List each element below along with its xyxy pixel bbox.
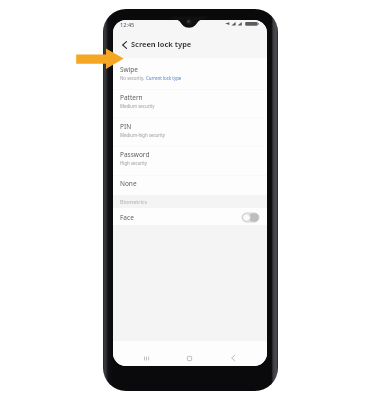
button[interactable]: Password	[113, 141, 267, 167]
staticText: Current lock type	[146, 75, 182, 81]
button[interactable]: PIN	[113, 113, 267, 139]
button[interactable]: None	[113, 170, 267, 193]
staticText: Face	[120, 213, 242, 222]
staticText: None	[120, 179, 137, 188]
staticText: Screen lock type	[131, 39, 192, 49]
button[interactable]: Recents	[140, 352, 152, 364]
button[interactable]: Swipe	[113, 56, 267, 82]
button[interactable]: Face toggle	[242, 213, 259, 222]
button[interactable]: Screen lock type	[131, 39, 192, 49]
staticText: No security,	[120, 75, 146, 81]
staticText: Password	[120, 150, 150, 159]
staticText: Medium-high security	[120, 132, 166, 138]
button[interactable]: Pattern	[113, 84, 267, 110]
staticText: Biometrics	[120, 198, 147, 205]
staticText: High security	[120, 160, 148, 166]
button[interactable]: Back	[117, 38, 131, 52]
button[interactable]: Back	[227, 352, 239, 364]
button[interactable]: Face	[113, 208, 267, 224]
staticText: 12:45	[120, 21, 135, 29]
staticText: Pattern	[120, 93, 143, 102]
staticText: PIN	[120, 122, 132, 131]
staticText: Swipe	[120, 65, 139, 74]
staticText: Medium security	[120, 103, 155, 109]
button[interactable]: Home	[183, 352, 195, 364]
